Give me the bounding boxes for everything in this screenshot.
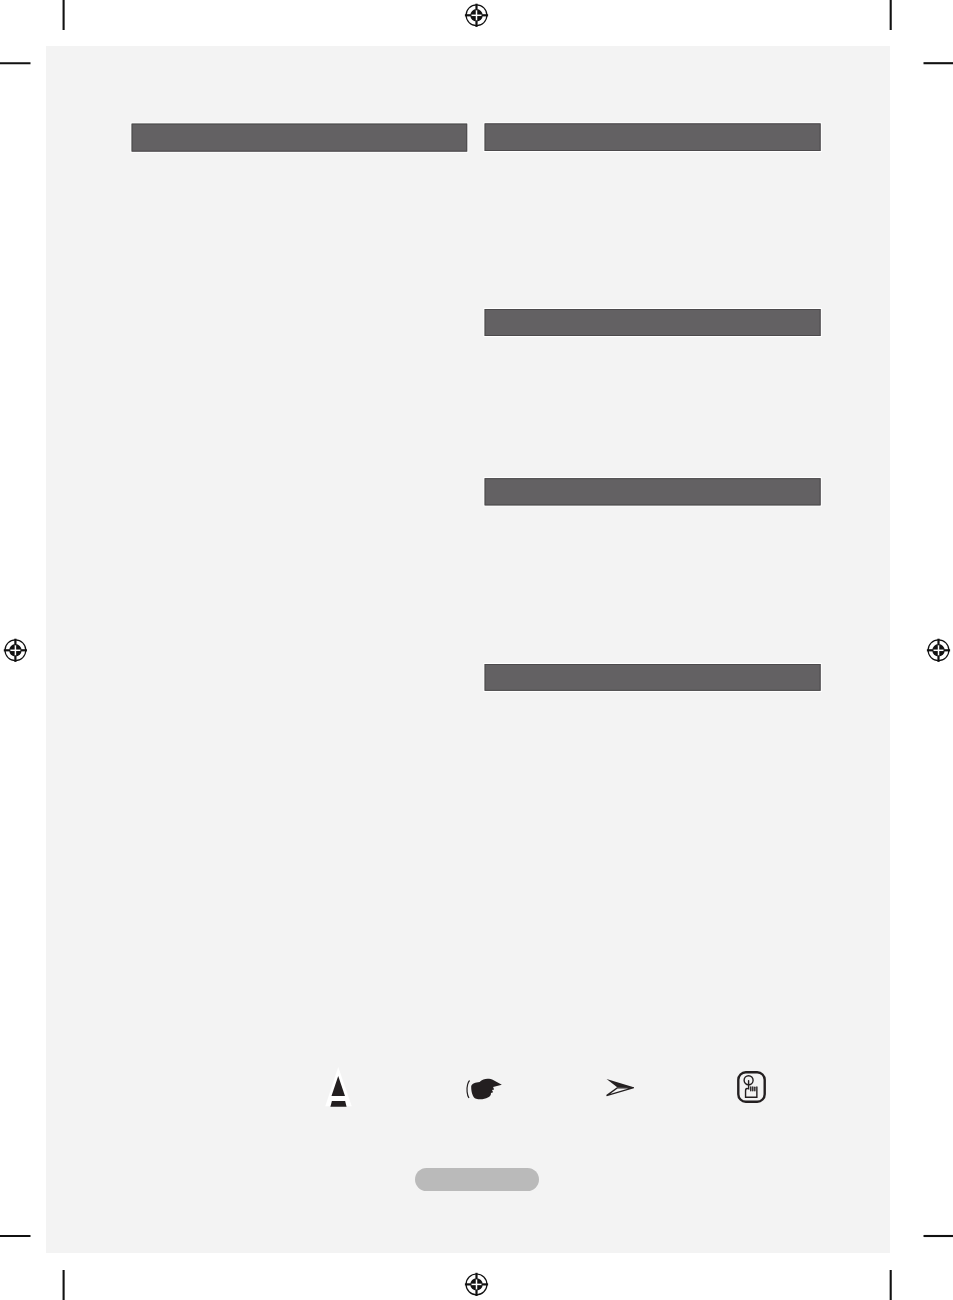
- button[interactable]: Send: [606, 1078, 634, 1096]
- button[interactable]: Placeholder: [415, 1168, 539, 1191]
- button[interactable]: Caution: [325, 1065, 352, 1107]
- button[interactable]: Pointing hand: [467, 1077, 502, 1100]
- button[interactable]: Tap: [737, 1071, 766, 1103]
